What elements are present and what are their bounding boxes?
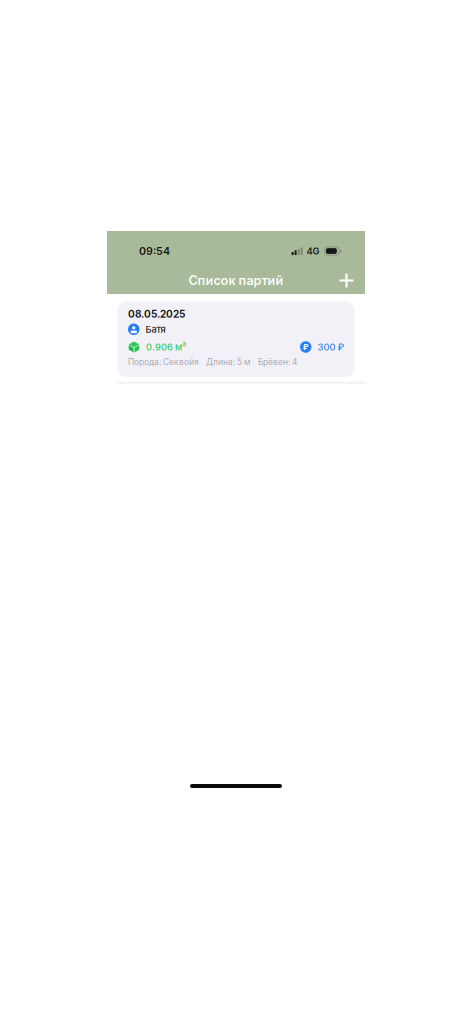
button[interactable]: Добавить партию — [332, 267, 361, 294]
staticText: 09:54 — [139, 244, 170, 257]
staticText: Порода: Секвойя — [128, 357, 199, 367]
staticText: 300 ₽ — [317, 341, 344, 353]
staticText: Брёвен: 4 — [258, 357, 297, 367]
staticText: 4G — [307, 245, 320, 257]
staticText: 0.906 м³ — [146, 341, 186, 353]
staticText: Батя — [145, 324, 165, 335]
staticText: 08.05.2025 — [128, 308, 185, 320]
staticText: Список партий — [188, 273, 283, 288]
staticText: ₽ — [303, 342, 309, 352]
staticText: Длина: 5 м — [206, 357, 250, 367]
button[interactable]: 08.05.2025 — [117, 301, 354, 377]
